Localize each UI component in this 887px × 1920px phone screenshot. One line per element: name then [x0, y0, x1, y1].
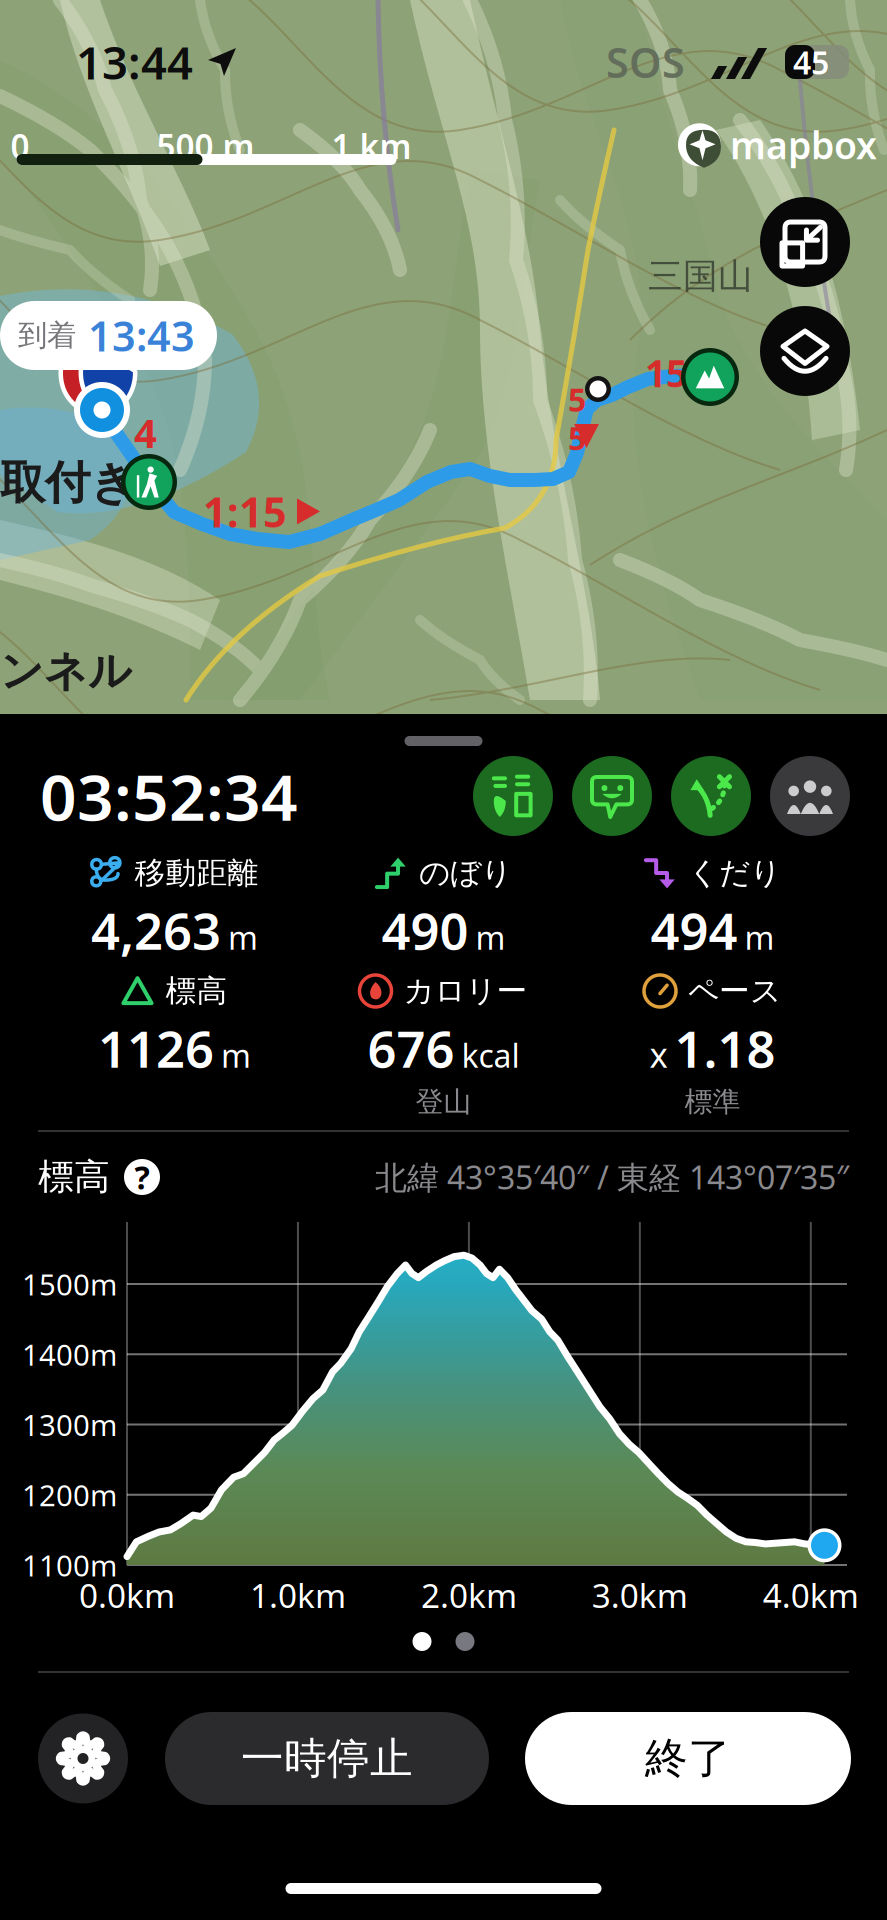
- staticText: のぼり: [419, 854, 512, 892]
- staticText: 13:44: [76, 32, 193, 92]
- staticText: m: [228, 916, 258, 958]
- staticText: 03:52:34: [40, 753, 298, 838]
- button[interactable]: Settings: [38, 1713, 128, 1803]
- staticText: 1300m: [22, 1405, 117, 1444]
- button[interactable]: Post a moment: [572, 756, 652, 836]
- staticText: 45: [793, 41, 829, 83]
- staticText: 2.0km: [421, 1573, 517, 1617]
- staticText: 15: [645, 348, 687, 398]
- staticText: 4,263: [91, 896, 221, 964]
- staticText: 標高: [165, 972, 227, 1010]
- staticText: 取付き: [0, 455, 136, 511]
- staticText: 490: [381, 896, 468, 964]
- staticText: くだり: [688, 854, 781, 892]
- staticText: 4.0km: [763, 1573, 859, 1617]
- button[interactable]: About elevation: [124, 1156, 160, 1198]
- button[interactable]: 終了: [525, 1712, 851, 1805]
- staticText: 1500m: [22, 1264, 117, 1303]
- button[interactable]: Map layers: [760, 306, 850, 396]
- staticText: SOS: [606, 35, 685, 89]
- staticText: 1126: [98, 1014, 214, 1082]
- staticText: 5: [568, 416, 586, 459]
- staticText: 494: [650, 896, 737, 964]
- staticText: 3.0km: [592, 1573, 688, 1617]
- staticText: 1.18: [674, 1014, 775, 1082]
- staticText: 1 km: [331, 124, 411, 168]
- button[interactable]: Members: [770, 756, 850, 836]
- staticText: 北緯 43°35′40″ / 東経 143°07′35″: [375, 1156, 849, 1198]
- staticText: 5: [568, 378, 586, 420]
- staticText: 1:15: [203, 484, 287, 539]
- staticText: 0.0km: [79, 1573, 175, 1617]
- staticText: 移動距離: [134, 854, 258, 892]
- staticText: 4: [134, 406, 157, 459]
- staticText: 1100m: [22, 1545, 117, 1584]
- staticText: ンネル: [0, 645, 132, 697]
- button[interactable]: Gear list: [473, 756, 553, 836]
- button[interactable]: Fit route to screen: [760, 197, 850, 287]
- staticText: 終了: [645, 1732, 731, 1785]
- staticText: カロリー: [403, 972, 527, 1010]
- staticText: 1.0km: [250, 1573, 346, 1617]
- staticText: x: [649, 1031, 667, 1077]
- staticText: ペース: [688, 972, 781, 1010]
- staticText: 1200m: [22, 1475, 117, 1514]
- staticText: 標準: [684, 1085, 740, 1119]
- staticText: 500 m: [156, 124, 254, 168]
- staticText: 一時停止: [241, 1732, 413, 1785]
- staticText: mapbox: [730, 120, 877, 170]
- staticText: m: [475, 916, 505, 958]
- staticText: 13:43: [88, 308, 195, 363]
- button[interactable]: Route deviation alert: [671, 756, 751, 836]
- button[interactable]: 一時停止: [165, 1712, 489, 1805]
- staticText: 676: [367, 1014, 454, 1082]
- staticText: m: [221, 1034, 251, 1076]
- staticText: 到着: [18, 317, 76, 353]
- staticText: m: [744, 916, 774, 958]
- staticText: 標高: [38, 1155, 110, 1199]
- staticText: 登山: [415, 1085, 471, 1119]
- staticText: 三国山: [648, 255, 753, 298]
- staticText: 1400m: [22, 1335, 117, 1374]
- staticText: ?: [134, 1156, 149, 1198]
- staticText: kcal: [461, 1034, 519, 1076]
- staticText: 0: [10, 124, 29, 168]
